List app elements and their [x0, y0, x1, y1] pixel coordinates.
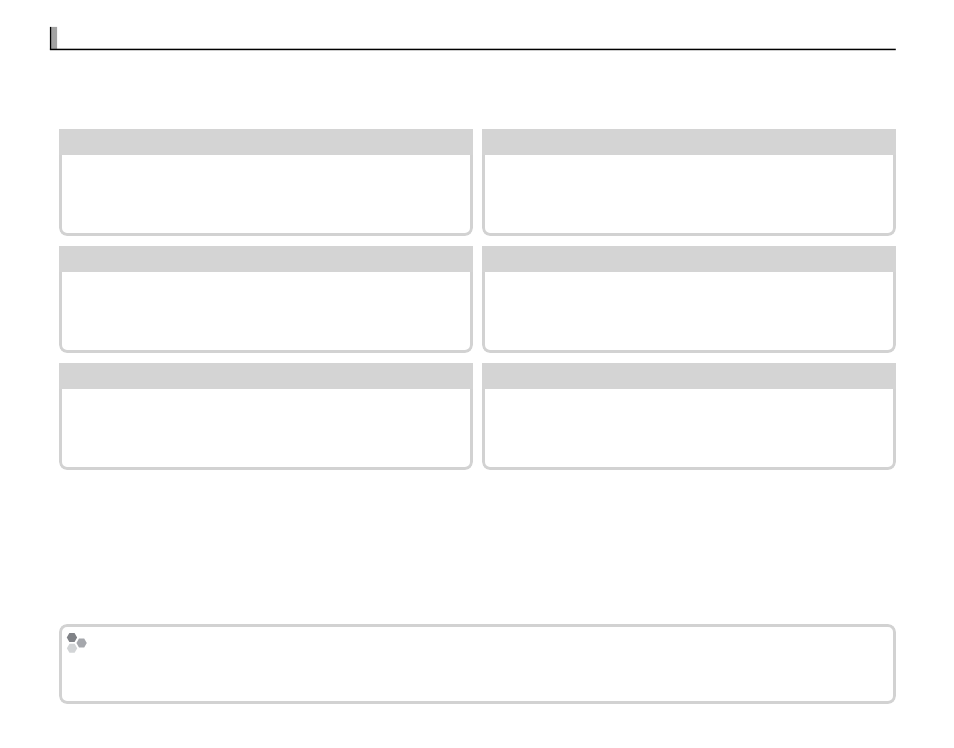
button[interactable] [482, 129, 896, 236]
button[interactable] [59, 363, 473, 470]
button[interactable] [59, 129, 473, 236]
button[interactable] [482, 246, 896, 353]
other: App icon [66, 631, 88, 653]
button[interactable] [59, 246, 473, 353]
button[interactable]: Selected tab [46, 22, 62, 50]
button[interactable] [482, 363, 896, 470]
button[interactable]: App icon [59, 624, 896, 704]
